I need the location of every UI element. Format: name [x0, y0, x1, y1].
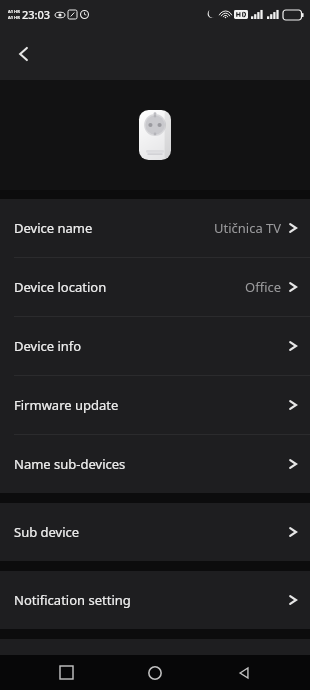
button[interactable]: Recent apps	[43, 655, 89, 690]
staticText: Device info	[14, 337, 82, 355]
button[interactable]: Firmware update	[0, 376, 310, 434]
staticText: 23:03	[22, 7, 51, 22]
button[interactable]: Device location	[0, 258, 310, 316]
staticText: A1 HR	[8, 9, 20, 14]
button[interactable]: Sub device	[0, 503, 310, 561]
button[interactable]: Device info	[0, 317, 310, 375]
staticText: Name sub-devices	[14, 455, 126, 473]
staticText: Device name	[14, 219, 93, 237]
staticText: Device location	[14, 278, 107, 296]
staticText: Utičnica TV	[214, 219, 282, 237]
staticText: A1 HR	[8, 15, 20, 20]
button[interactable]: Name sub-devices	[0, 435, 310, 493]
button[interactable]: Back	[4, 34, 44, 74]
button[interactable]: Back	[221, 655, 267, 690]
staticText: Sub device	[14, 523, 80, 541]
button[interactable]: Device name	[0, 199, 310, 257]
button[interactable]: Notification setting	[0, 571, 310, 629]
staticText: Office	[245, 278, 282, 296]
staticText: Notification setting	[14, 591, 131, 609]
staticText: Firmware update	[14, 396, 119, 414]
button[interactable]: Home	[132, 655, 178, 690]
button[interactable]: Indicator	[0, 639, 310, 679]
